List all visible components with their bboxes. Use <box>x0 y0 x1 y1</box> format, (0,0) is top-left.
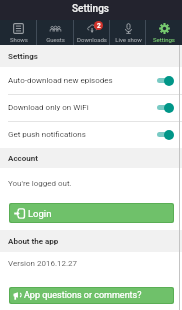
staticText: Auto-download new episodes <box>8 76 157 85</box>
button[interactable]: Downloads <box>74 20 110 45</box>
staticText: 2 <box>97 22 101 30</box>
button[interactable]: Shows <box>0 20 37 45</box>
other: Guests <box>50 23 61 34</box>
staticText: Version 2016.12.27 <box>8 259 78 268</box>
staticText: About the app <box>8 237 59 246</box>
button[interactable]: Download only on WiFi <box>0 94 182 121</box>
staticText: Download only on WiFi <box>8 103 157 112</box>
button[interactable]: Login <box>10 204 173 222</box>
staticText: You're logged out. <box>8 179 72 188</box>
staticText: Settings <box>8 52 38 61</box>
staticText: Get push notifications <box>8 130 157 139</box>
other: Settings <box>159 23 170 34</box>
button[interactable]: Live show <box>110 20 146 45</box>
staticText: App questions or comments? <box>24 290 142 301</box>
button[interactable]: Get push notifications <box>0 121 182 148</box>
staticText: Guests <box>46 36 65 43</box>
button[interactable]: Auto-download new episodes <box>0 67 182 94</box>
button[interactable]: Settings <box>146 20 182 45</box>
staticText: Login <box>28 208 52 219</box>
staticText: Live show <box>115 36 142 43</box>
staticText: Downloads <box>77 36 107 43</box>
other: Shows <box>13 23 24 34</box>
staticText: Settings <box>72 3 110 15</box>
staticText: Shows <box>10 36 28 43</box>
button[interactable]: Guests <box>37 20 74 45</box>
button[interactable]: App questions or comments? <box>10 288 173 303</box>
staticText: Settings <box>153 36 175 43</box>
staticText: Account <box>8 154 38 163</box>
other: Downloads <box>87 23 98 34</box>
other: Live show <box>123 23 134 34</box>
